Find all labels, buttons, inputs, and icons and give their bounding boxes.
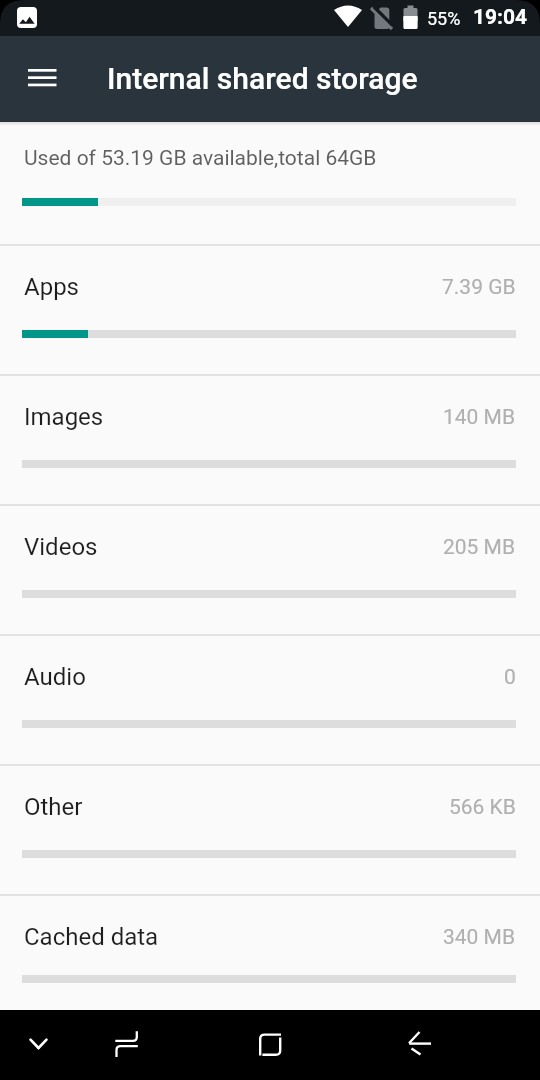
button[interactable] — [103, 1020, 151, 1068]
staticText: 0 — [504, 665, 516, 690]
staticText: 205 MB — [443, 535, 516, 560]
button[interactable] — [0, 504, 540, 634]
staticText: 140 MB — [443, 405, 516, 430]
button[interactable] — [0, 764, 540, 894]
staticText: Internal shared storage — [107, 61, 418, 96]
button[interactable] — [14, 1020, 62, 1068]
button[interactable] — [0, 374, 540, 504]
button[interactable] — [246, 1020, 294, 1068]
button[interactable] — [0, 634, 540, 764]
staticText: Audio — [24, 663, 86, 691]
staticText: 566 KB — [449, 795, 516, 820]
button[interactable] — [18, 54, 66, 102]
button[interactable] — [0, 894, 540, 1024]
staticText: 7.39 GB — [442, 275, 516, 300]
staticText: Videos — [24, 533, 98, 561]
staticText: Used of 53.19 GB available,total 64GB — [24, 146, 377, 171]
staticText: Other — [24, 793, 83, 821]
staticText: 19:04 — [473, 5, 528, 30]
button[interactable] — [396, 1019, 444, 1067]
button[interactable] — [0, 244, 540, 374]
staticText: Apps — [24, 273, 79, 301]
staticText: Cached data — [24, 923, 159, 951]
staticText: Images — [24, 403, 104, 431]
staticText: 55% — [427, 8, 461, 29]
staticText: 340 MB — [443, 925, 516, 950]
button[interactable] — [0, 124, 540, 244]
